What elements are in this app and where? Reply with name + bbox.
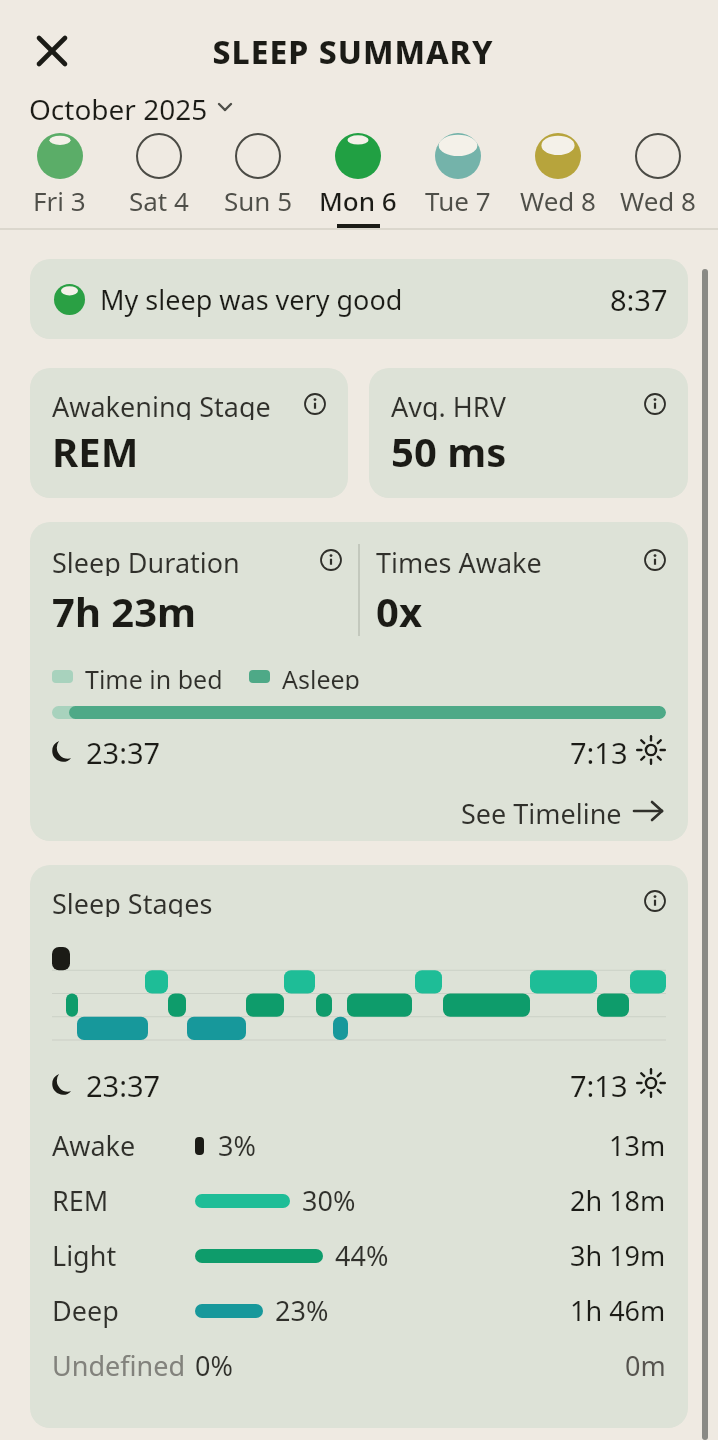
- button[interactable]: Awakening Stage: [30, 368, 348, 498]
- staticText: Asleep: [282, 662, 360, 690]
- staticText: REM: [52, 1182, 195, 1219]
- button[interactable]: Wed 8: [508, 133, 608, 215]
- staticText: Deep: [52, 1292, 195, 1329]
- button[interactable]: Undefined: [52, 1338, 666, 1393]
- button[interactable]: Sleep Stages: [30, 865, 688, 1428]
- button[interactable]: See Timeline: [52, 795, 666, 827]
- button[interactable]: Sat 4: [109, 133, 208, 215]
- button[interactable]: Sun 5: [208, 133, 308, 215]
- staticText: Light: [52, 1237, 195, 1274]
- staticText: 0m: [625, 1347, 666, 1384]
- staticText: Times Awake: [376, 544, 542, 576]
- staticText: 2h 18m: [570, 1182, 666, 1219]
- button[interactable]: REM: [52, 1173, 666, 1228]
- staticText: Tue 7: [425, 183, 491, 215]
- staticText: 23:37: [86, 1066, 161, 1100]
- button[interactable]: My sleep was very good: [30, 259, 688, 339]
- staticText: 0%: [195, 1347, 233, 1384]
- staticText: Sleep Stages: [52, 885, 213, 917]
- staticText: 50 ms: [391, 424, 507, 470]
- button[interactable]: Tue 7: [408, 133, 508, 215]
- button[interactable]: October 2025: [29, 90, 232, 124]
- staticText: 7:13: [570, 733, 628, 767]
- staticText: 7:13: [570, 1066, 628, 1100]
- staticText: 8:37: [610, 280, 668, 319]
- staticText: 23:37: [86, 733, 161, 767]
- staticText: SLEEP SUMMARY: [0, 30, 712, 74]
- button[interactable]: Light: [52, 1228, 666, 1283]
- staticText: My sleep was very good: [100, 281, 403, 318]
- button[interactable]: Avg. HRV: [369, 368, 688, 498]
- staticText: Sleep Duration: [52, 544, 240, 576]
- staticText: Wed 8: [620, 183, 696, 215]
- staticText: Time in bed: [85, 662, 223, 690]
- staticText: Fri 3: [33, 183, 86, 215]
- staticText: Awake: [52, 1127, 195, 1164]
- button[interactable]: Wed 8: [608, 133, 708, 215]
- staticText: Undefined: [52, 1347, 195, 1384]
- staticText: 7h 23m: [52, 584, 197, 630]
- button[interactable]: Mon 6: [308, 133, 408, 228]
- staticText: 0x: [376, 584, 422, 630]
- staticText: 3h 19m: [570, 1237, 666, 1274]
- staticText: REM: [52, 424, 139, 470]
- staticText: 3%: [218, 1127, 256, 1164]
- staticText: October 2025: [29, 90, 208, 124]
- staticText: 1h 46m: [570, 1292, 666, 1329]
- button[interactable]: Sleep Duration: [30, 522, 688, 841]
- staticText: Mon 6: [319, 183, 397, 215]
- staticText: 13m: [609, 1127, 666, 1164]
- staticText: Sun 5: [224, 183, 293, 215]
- staticText: Awakening Stage: [52, 388, 271, 420]
- staticText: 44%: [335, 1237, 389, 1274]
- staticText: See Timeline: [461, 795, 622, 827]
- staticText: 23%: [275, 1292, 329, 1329]
- button[interactable]: [38, 37, 66, 65]
- button[interactable]: Awake: [52, 1118, 666, 1173]
- staticText: Sat 4: [129, 183, 189, 215]
- staticText: Avg. HRV: [391, 388, 506, 420]
- button[interactable]: Fri 3: [10, 133, 109, 215]
- staticText: 30%: [302, 1182, 356, 1219]
- staticText: Wed 8: [520, 183, 596, 215]
- button[interactable]: Deep: [52, 1283, 666, 1338]
